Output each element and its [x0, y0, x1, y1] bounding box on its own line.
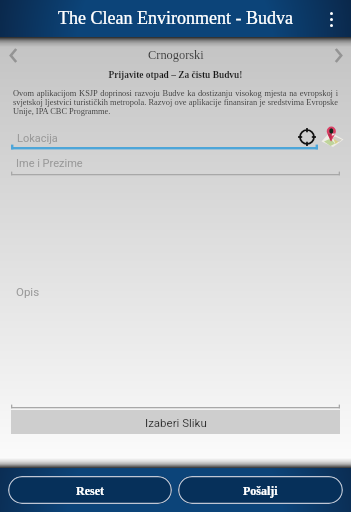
button[interactable]: Next language: [325, 43, 351, 67]
staticText: Lokacija: [17, 132, 58, 145]
button[interactable]: Pošalji: [178, 476, 343, 504]
button[interactable]: Reset: [8, 476, 172, 504]
staticText: The Clean Environment - Budva: [58, 8, 293, 28]
staticText: Prijavite otpad – Za čistu Budvu!: [0, 70, 351, 80]
button[interactable]: More options: [319, 7, 343, 31]
staticText: Ime i Prezime: [16, 157, 83, 170]
button[interactable]: Use current location: [298, 128, 316, 146]
staticText: Crnogorski: [148, 48, 204, 62]
button[interactable]: Previous language: [0, 43, 26, 67]
button[interactable]: Pick location on map: [320, 125, 344, 149]
staticText: Pošalji: [243, 484, 278, 497]
staticText: Opis: [16, 285, 40, 298]
staticText: Ovom aplikacijom KSJP doprinosi razvoju …: [13, 89, 338, 116]
staticText: Reset: [76, 484, 104, 497]
button[interactable]: Izaberi Sliku: [11, 410, 340, 434]
staticText: Izaberi Sliku: [145, 416, 207, 429]
